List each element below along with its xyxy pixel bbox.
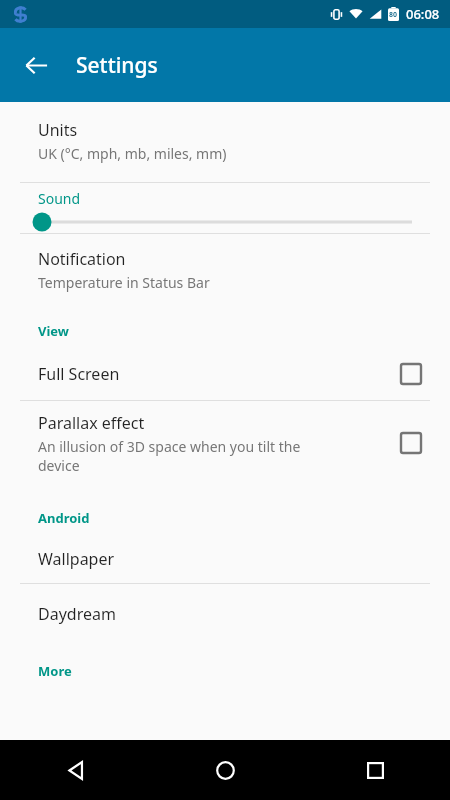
staticText: 06:08	[406, 5, 440, 23]
staticText: Units	[38, 119, 78, 141]
button[interactable]: Daydream	[0, 590, 450, 638]
staticText: Parallax effect	[38, 412, 145, 434]
staticText: An illusion of 3D space when you tilt th…	[38, 437, 301, 475]
button[interactable]: Parallax effect	[0, 401, 450, 485]
button[interactable]: Wallpaper	[0, 535, 450, 583]
staticText: Full Screen	[38, 363, 120, 385]
staticText: Daydream	[38, 603, 116, 625]
staticText: 80	[389, 10, 398, 20]
staticText: Wallpaper	[38, 548, 115, 570]
staticText: Notification	[38, 248, 126, 270]
staticText: Temperature in Status Bar	[38, 273, 210, 292]
button[interactable]: Recent apps	[300, 740, 450, 800]
button[interactable]: Back	[0, 740, 150, 800]
button[interactable]: Home	[150, 740, 300, 800]
button[interactable]: Units	[0, 112, 450, 170]
staticText: UK (°C, mph, mb, miles, mm)	[38, 144, 227, 163]
button[interactable]: Sound	[0, 183, 450, 233]
staticText: View	[38, 322, 69, 340]
staticText: Android	[38, 509, 90, 527]
button[interactable]: Full Screen	[0, 348, 450, 400]
staticText: More	[38, 662, 72, 680]
staticText: Sound	[38, 189, 81, 208]
button[interactable]: Back	[14, 43, 58, 87]
staticText: Settings	[76, 51, 158, 80]
button[interactable]: Notification	[0, 242, 450, 298]
